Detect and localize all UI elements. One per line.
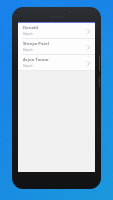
- staticText: Report: [23, 48, 33, 52]
- staticText: Arjun Tomar: [23, 57, 49, 63]
- button[interactable]: Donald: [18, 23, 95, 38]
- button[interactable]: Shreya Patel: [18, 39, 95, 54]
- other: Open details: [85, 25, 91, 37]
- staticText: Donald: [23, 25, 38, 31]
- staticText: Shreya Patel: [23, 41, 49, 47]
- staticText: Report: [23, 32, 33, 36]
- other: Open details: [85, 41, 91, 53]
- button[interactable]: Arjun Tomar: [18, 55, 95, 70]
- other: Open details: [85, 57, 91, 69]
- staticText: Report: [23, 64, 33, 68]
